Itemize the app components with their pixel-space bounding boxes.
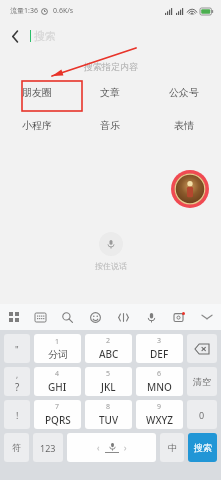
- button[interactable]: Emoji: [81, 304, 109, 330]
- staticText: !: [16, 409, 19, 421]
- staticText: TUV: [99, 413, 119, 427]
- button[interactable]: ,: [4, 367, 30, 396]
- button[interactable]: 朋友圈: [0, 76, 73, 109]
- button[interactable]: 音乐: [73, 109, 147, 142]
- button[interactable]: Back: [0, 22, 30, 50]
- button[interactable]: 0: [187, 400, 217, 429]
- staticText: ABC: [99, 347, 119, 361]
- button[interactable]: 中: [160, 433, 184, 462]
- button[interactable]: 表情: [147, 109, 221, 142]
- staticText: GHI: [48, 380, 67, 394]
- button[interactable]: Hide keyboard: [193, 304, 221, 330]
- button[interactable]: 小程序: [0, 109, 73, 142]
- staticText: 搜索指定内容: [84, 61, 138, 72]
- button[interactable]: 公众号: [147, 76, 221, 109]
- button[interactable]: 3: [136, 334, 183, 363]
- staticText: 小程序: [22, 119, 52, 132]
- staticText: 按住说话: [95, 261, 127, 271]
- button[interactable]: 8: [85, 400, 132, 429]
- staticText: 0: [199, 409, 205, 421]
- button[interactable]: Backspace: [187, 334, 217, 363]
- staticText: 0.6K/s: [53, 6, 74, 16]
- button[interactable]: Hold to talk: [99, 232, 123, 256]
- staticText: 搜索: [194, 442, 212, 453]
- button[interactable]: Grid: [0, 304, 27, 330]
- button[interactable]: Keyboard: [27, 304, 54, 330]
- staticText: 7: [55, 402, 60, 412]
- staticText: 搜索: [34, 29, 56, 43]
- staticText: ?: [15, 380, 20, 394]
- button[interactable]: 2: [85, 334, 132, 363]
- staticText: 3: [157, 336, 162, 346]
- staticText: 文章: [100, 86, 120, 99]
- staticText: ‹: [97, 442, 100, 453]
- staticText: 4: [55, 369, 60, 379]
- button[interactable]: Search: [54, 304, 81, 330]
- staticText: 中: [168, 442, 177, 453]
- button[interactable]: 123: [33, 433, 63, 462]
- button[interactable]: 9: [136, 400, 183, 429]
- staticText: DEF: [150, 347, 169, 361]
- staticText: 123: [40, 442, 56, 454]
- staticText: 朋友圈: [22, 86, 52, 99]
- staticText: ,: [16, 369, 19, 380]
- staticText: 音乐: [100, 119, 120, 132]
- button[interactable]: !: [4, 400, 30, 429]
- staticText: MNO: [147, 380, 172, 394]
- button[interactable]: 6: [136, 367, 183, 396]
- staticText: 1: [55, 337, 60, 347]
- button[interactable]: ": [4, 334, 30, 363]
- staticText: 5: [106, 369, 111, 379]
- button[interactable]: 清空: [187, 367, 217, 396]
- staticText: 公众号: [169, 86, 199, 99]
- staticText: JKL: [101, 380, 116, 394]
- staticText: 2: [106, 336, 111, 346]
- staticText: 流量1:36: [10, 6, 38, 16]
- button[interactable]: Avatar: [171, 170, 209, 208]
- button[interactable]: 4: [34, 367, 81, 396]
- button[interactable]: 7: [34, 400, 81, 429]
- staticText: 符: [12, 442, 21, 453]
- button[interactable]: 5: [85, 367, 132, 396]
- button[interactable]: Space: [67, 433, 156, 462]
- button[interactable]: 符: [4, 433, 29, 462]
- staticText: 分词: [48, 348, 68, 361]
- staticText: 9: [157, 402, 162, 412]
- staticText: PQRS: [45, 413, 71, 427]
- staticText: 6: [157, 369, 162, 379]
- staticText: 清空: [193, 376, 211, 387]
- button[interactable]: 1: [34, 334, 81, 363]
- button[interactable]: 文章: [73, 76, 147, 109]
- button[interactable]: Voice: [137, 304, 165, 330]
- staticText: WXYZ: [146, 413, 174, 427]
- staticText: 表情: [174, 119, 194, 132]
- button[interactable]: Clipboard: [109, 304, 137, 330]
- staticText: 8: [106, 402, 111, 412]
- button[interactable]: Theme: [165, 304, 193, 330]
- button[interactable]: 搜索: [188, 433, 217, 462]
- staticText: ›: [124, 442, 127, 453]
- staticText: ": [15, 343, 19, 355]
